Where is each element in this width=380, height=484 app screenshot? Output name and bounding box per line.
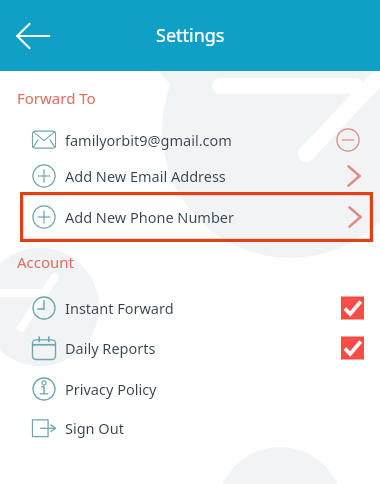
staticText: Forward To — [17, 88, 96, 108]
button[interactable]: Instant Forward — [0, 289, 380, 327]
button[interactable]: Sign Out — [0, 409, 380, 447]
button[interactable]: Back — [12, 14, 56, 58]
button[interactable]: Add New Phone Number — [20, 192, 373, 242]
button[interactable]: Daily Reports enabled — [336, 336, 360, 360]
button[interactable]: Privacy Policy — [0, 370, 380, 408]
button[interactable]: Open — [336, 164, 360, 188]
staticText: Privacy Policy — [65, 379, 157, 399]
staticText: Daily Reports — [65, 338, 156, 358]
staticText: Instant Forward — [65, 298, 174, 318]
staticText: Account — [17, 252, 75, 272]
staticText: Settings — [156, 23, 225, 48]
button[interactable]: Remove — [336, 128, 360, 152]
button[interactable]: Instant Forward enabled — [336, 296, 360, 320]
staticText: familyorbit9@gmail.com — [65, 130, 232, 150]
button[interactable]: Daily Reports — [0, 329, 380, 367]
button[interactable]: Open — [337, 205, 361, 229]
staticText: Add New Email Address — [65, 166, 226, 186]
button[interactable]: Add New Email Address — [0, 157, 380, 195]
staticText: Add New Phone Number — [65, 207, 234, 227]
button[interactable]: familyorbit9@gmail.com — [0, 121, 380, 159]
staticText: Sign Out — [65, 418, 124, 438]
